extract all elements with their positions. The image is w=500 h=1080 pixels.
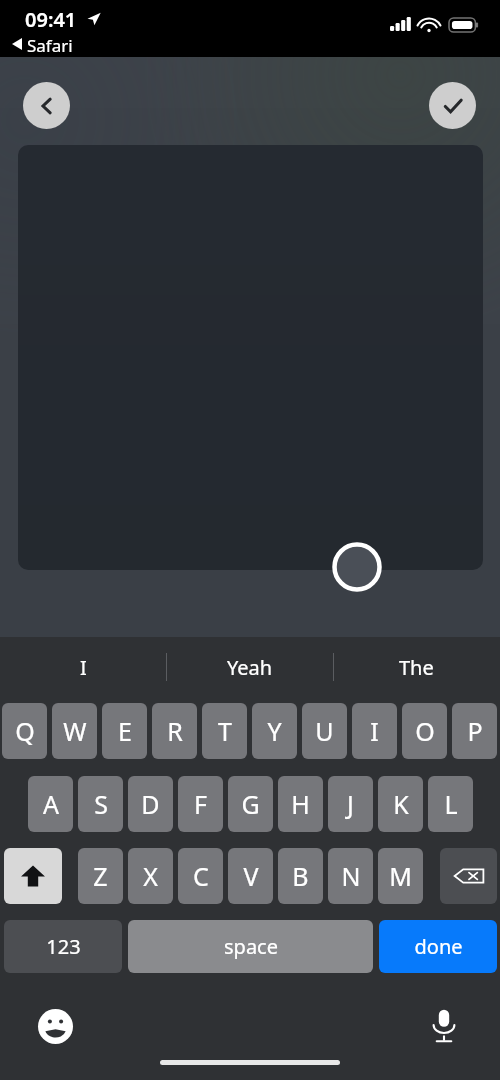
staticText: N (341, 859, 361, 893)
staticText: S (94, 787, 108, 821)
staticText: P (467, 714, 483, 748)
staticText: E (118, 714, 132, 748)
button[interactable]: T (202, 703, 247, 759)
staticText: O (415, 714, 435, 748)
staticText: F (194, 787, 207, 821)
button[interactable]: K (378, 776, 423, 832)
staticText: 123 (46, 933, 81, 960)
button[interactable]: V (228, 848, 273, 904)
button[interactable]: P (452, 703, 497, 759)
staticText: K (393, 787, 409, 821)
staticText: B (292, 859, 309, 893)
staticText: R (167, 714, 183, 748)
button[interactable]: M (378, 848, 423, 904)
button[interactable]: H (278, 776, 323, 832)
button[interactable]: done (379, 920, 497, 973)
staticText: V (243, 859, 259, 893)
button[interactable]: D (128, 776, 173, 832)
staticText: Z (93, 859, 108, 893)
button[interactable]: I (0, 637, 166, 697)
button[interactable]: space (128, 920, 373, 973)
button[interactable]: The (333, 637, 499, 697)
button[interactable]: S (78, 776, 123, 832)
button[interactable]: Q (2, 703, 47, 759)
staticText: L (444, 787, 458, 821)
staticText: A (43, 787, 59, 821)
staticText: Yeah (227, 654, 273, 681)
staticText: space (224, 933, 278, 960)
button[interactable]: G (228, 776, 273, 832)
button[interactable]: Emoji (31, 1002, 79, 1050)
button[interactable]: Shift (4, 848, 62, 904)
button[interactable]: C (178, 848, 223, 904)
staticText: done (414, 933, 463, 960)
button[interactable]: O (402, 703, 447, 759)
staticText: J (347, 787, 354, 821)
button[interactable]: I (352, 703, 397, 759)
button[interactable]: N (328, 848, 373, 904)
button[interactable]: Resize handle (332, 542, 382, 592)
staticText: M (389, 859, 412, 893)
button[interactable]: J (328, 776, 373, 832)
staticText: C (193, 859, 209, 893)
button[interactable]: E (102, 703, 147, 759)
button[interactable]: Done (429, 82, 476, 129)
button[interactable]: Backspace (440, 848, 497, 904)
button[interactable]: F (178, 776, 223, 832)
staticText: G (241, 787, 260, 821)
staticText: I (370, 714, 379, 748)
button[interactable]: Dictate (420, 1002, 468, 1050)
button[interactable]: Y (252, 703, 297, 759)
staticText: X (143, 859, 158, 893)
staticText: I (80, 654, 87, 681)
button[interactable]: Z (78, 848, 123, 904)
button[interactable]: L (428, 776, 473, 832)
button[interactable]: B (278, 848, 323, 904)
staticText: D (141, 787, 160, 821)
staticText: Y (267, 714, 282, 748)
staticText: T (218, 714, 232, 748)
button[interactable]: W (52, 703, 97, 759)
button[interactable]: R (152, 703, 197, 759)
button[interactable]: Yeah (167, 637, 333, 697)
staticText: Q (15, 714, 35, 748)
button[interactable]: 123 (4, 920, 122, 973)
staticText: W (63, 714, 87, 748)
staticText: H (291, 787, 310, 821)
button[interactable]: U (302, 703, 347, 759)
staticText: U (315, 714, 334, 748)
button[interactable]: Back (23, 82, 70, 129)
staticText: The (399, 654, 434, 681)
button[interactable]: A (28, 776, 73, 832)
button[interactable] (18, 145, 483, 570)
staticText: 09:41 (25, 6, 77, 33)
button[interactable]: X (128, 848, 173, 904)
staticText: Safari (27, 34, 73, 57)
